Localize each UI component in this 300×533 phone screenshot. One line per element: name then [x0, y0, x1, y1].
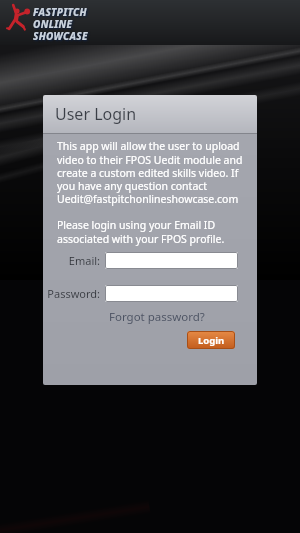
- button[interactable]: [105, 285, 238, 302]
- staticText: Password:: [43, 286, 100, 301]
- staticText: Please login using your Email ID associa…: [57, 218, 225, 246]
- staticText: This app will allow the user to upload v…: [57, 139, 243, 206]
- staticText: FASTPITCH: [33, 5, 87, 19]
- button[interactable]: Login: [187, 331, 235, 349]
- staticText: User Login: [55, 103, 137, 125]
- staticText: SHOWCASE: [33, 29, 88, 43]
- button[interactable]: [105, 252, 238, 269]
- button[interactable]: Forgot password?: [109, 309, 205, 325]
- staticText: Email:: [43, 253, 100, 268]
- staticText: ONLINE: [33, 17, 73, 31]
- staticText: Login: [198, 334, 225, 347]
